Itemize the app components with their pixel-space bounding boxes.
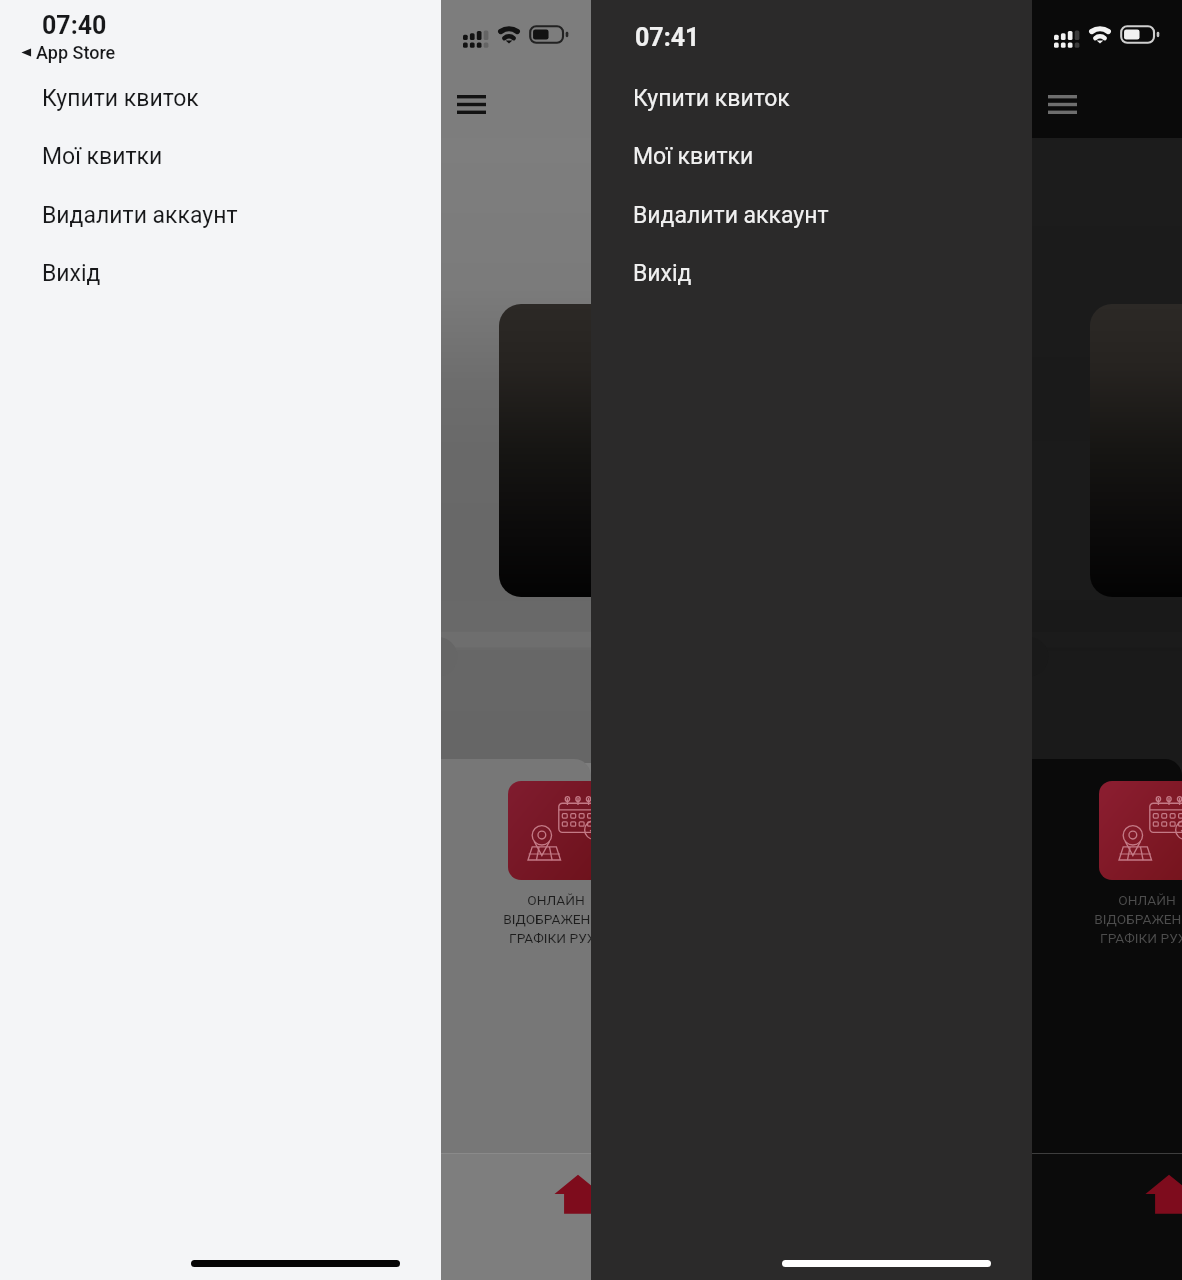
button[interactable]: Вихід (591, 250, 1032, 308)
staticText: 07:40 (42, 11, 107, 40)
staticText: ВІДОБРАЖЕННЯ (1094, 911, 1182, 927)
staticText: Мої квитки (42, 143, 163, 170)
button[interactable]: Home (1143, 1168, 1182, 1220)
staticText: Мої квитки (633, 143, 754, 170)
staticText: App Store (36, 42, 116, 63)
button[interactable] (1099, 781, 1182, 880)
staticText: Видалити аккаунт (633, 202, 829, 229)
button[interactable]: Видалити аккаунт (591, 192, 1032, 250)
staticText: 07:41 (635, 23, 700, 52)
button[interactable]: Open menu (449, 82, 494, 126)
staticText: ГРАФІКИ РУХУ (509, 930, 604, 946)
staticText: ОНЛАЙН (527, 892, 585, 908)
staticText: Видалити аккаунт (42, 202, 238, 229)
staticText: ВІДОБРАЖЕННЯ (503, 911, 609, 927)
button[interactable]: Home (552, 1168, 604, 1220)
staticText: Купити квиток (42, 85, 199, 112)
button[interactable] (508, 781, 628, 880)
button[interactable]: Купити квиток (0, 75, 441, 133)
button[interactable] (499, 304, 699, 597)
staticText: Вихід (42, 260, 101, 287)
staticText: ГРАФІКИ РУХУ (1100, 930, 1182, 946)
button[interactable] (1090, 304, 1182, 597)
button[interactable]: Мої квитки (0, 133, 441, 191)
button[interactable]: Вихід (0, 250, 441, 308)
button[interactable]: Мої квитки (591, 133, 1032, 191)
button[interactable]: Купити квиток (591, 75, 1032, 133)
staticText: ОНЛАЙН (1118, 892, 1176, 908)
button[interactable]: Видалити аккаунт (0, 192, 441, 250)
staticText: Вихід (633, 260, 692, 287)
staticText: Купити квиток (633, 85, 790, 112)
button[interactable]: Open menu (1040, 82, 1085, 126)
